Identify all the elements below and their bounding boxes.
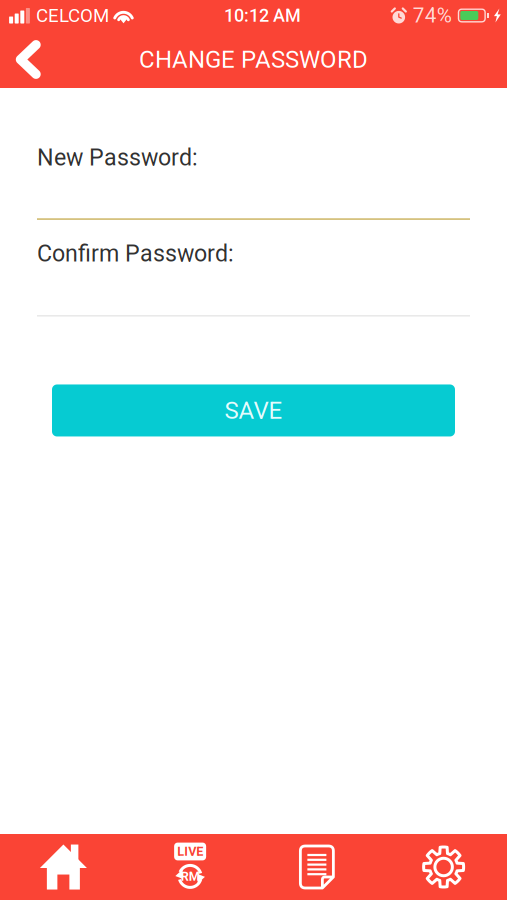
staticText: RM [181,869,200,884]
staticText: LIVE [177,844,203,859]
button[interactable]: SAVE [52,384,455,436]
button[interactable]: Home [0,834,127,900]
staticText: SAVE [224,396,282,424]
staticText: 74% [413,3,452,28]
staticText: CELCOM [36,5,109,26]
button[interactable]: Back [0,31,57,88]
staticText: Confirm Password: [37,240,234,267]
staticText: 10:12 AM [224,5,301,26]
button[interactable]: Live RM rates [127,834,254,900]
button[interactable]: Settings [380,834,507,900]
staticText: New Password: [37,144,198,171]
staticText: CHANGE PASSWORD [139,45,368,73]
button[interactable]: Statements [253,834,380,900]
